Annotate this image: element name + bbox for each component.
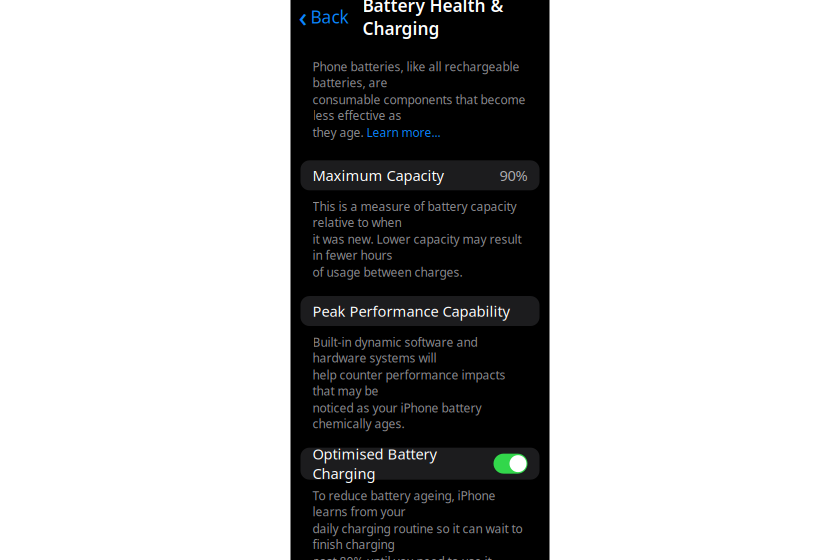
staticText: noticed as your iPhone battery chemicall…: [312, 400, 481, 432]
staticText: daily charging routine so it can wait to…: [312, 520, 522, 552]
staticText: past 80% until you need to use it.: [312, 553, 494, 560]
staticText: Back: [310, 5, 348, 28]
staticText: This is a measure of battery capacity re…: [312, 198, 516, 230]
staticText: Phone batteries, like all rechargeable b…: [312, 59, 519, 91]
staticText: it was new. Lower capacity may result in…: [312, 231, 521, 263]
staticText: 90%: [499, 166, 527, 185]
staticText: Built-in dynamic software and hardware s…: [312, 334, 477, 366]
button[interactable]: Maximum Capacity: [300, 160, 539, 190]
staticText: Peak Performance Capability: [312, 301, 509, 321]
staticText: To reduce battery ageing, iPhone learns …: [312, 488, 495, 519]
staticText: they age.: [312, 124, 363, 140]
staticText: ‹: [298, 0, 307, 34]
staticText: help counter performance impacts that ma…: [312, 367, 505, 399]
staticText: consumable components that become less e…: [312, 91, 525, 123]
button[interactable]: Learn more...: [366, 124, 440, 140]
staticText: of usage between charges.: [312, 264, 462, 280]
button[interactable]: Peak Performance Capability: [300, 296, 539, 326]
staticText: Learn more...: [366, 124, 440, 140]
staticText: Maximum Capacity: [312, 166, 443, 185]
staticText: Optimised Battery Charging: [312, 444, 436, 483]
button[interactable]: Optimised Battery Charging: [300, 448, 539, 480]
button[interactable]: ‹: [298, 0, 356, 39]
staticText: Battery Health & Charging: [362, 0, 503, 40]
